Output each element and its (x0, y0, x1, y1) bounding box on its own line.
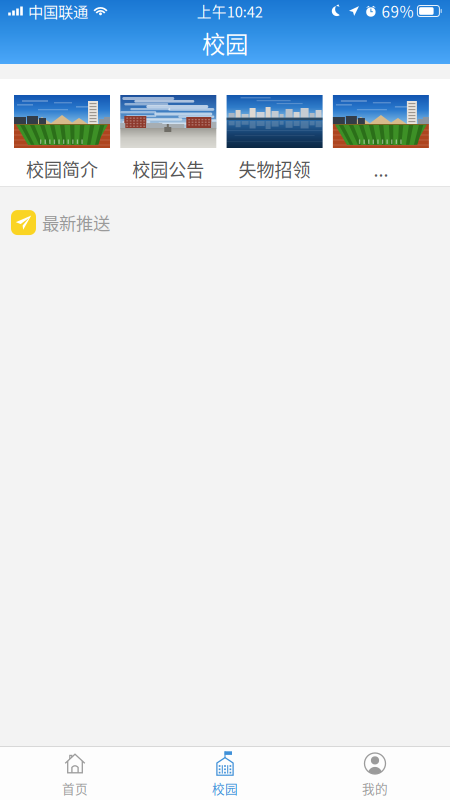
button[interactable]: 失物招领 (227, 95, 323, 179)
staticText: 中国联通 (28, 0, 88, 22)
button[interactable]: 校园简介 (14, 95, 110, 179)
button[interactable]: 最新推送 (0, 187, 450, 248)
button[interactable]: 校园 (150, 746, 300, 800)
staticText: 上午10:42 (197, 0, 263, 22)
staticText: 校园 (202, 26, 248, 60)
staticText: 失物招领 (239, 156, 311, 182)
button[interactable]: 我的 (300, 746, 450, 800)
button[interactable]: ... (333, 95, 429, 179)
button[interactable]: 校园公告 (120, 95, 216, 179)
staticText: 校园简介 (26, 156, 98, 182)
staticText: ... (373, 156, 388, 182)
staticText: 校园 (212, 779, 238, 797)
button[interactable]: 首页 (0, 746, 150, 800)
staticText: 首页 (62, 779, 88, 797)
staticText: 校园公告 (132, 156, 204, 182)
staticText: 最新推送 (42, 210, 110, 235)
staticText: 我的 (362, 779, 388, 797)
staticText: 69% (381, 0, 413, 22)
